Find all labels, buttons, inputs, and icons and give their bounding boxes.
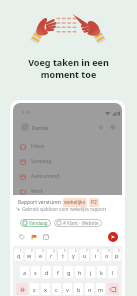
staticText: P2 <box>91 199 97 206</box>
staticText: d <box>45 269 49 276</box>
other: Label <box>19 234 25 240</box>
button[interactable]: Vandaag <box>20 155 122 168</box>
button[interactable]: Aankomend <box>20 170 122 183</box>
other: Priority <box>31 234 37 240</box>
staticText: v <box>66 286 69 293</box>
staticText: 9 <box>108 249 110 253</box>
button[interactable]: Send <box>108 232 118 242</box>
staticText: p <box>115 252 119 259</box>
button[interactable]: d <box>42 266 51 278</box>
button[interactable]: w <box>25 249 34 261</box>
button[interactable]: Backspace <box>107 283 119 295</box>
button[interactable]: u <box>80 249 89 261</box>
button[interactable]: # Klant - Website <box>54 219 102 227</box>
button[interactable]: b <box>74 283 83 295</box>
button[interactable]: h <box>75 266 84 278</box>
staticText: q <box>17 252 21 259</box>
button[interactable]: k <box>97 266 106 278</box>
staticText: a <box>23 269 27 276</box>
staticText: Vandaag <box>31 158 52 165</box>
staticText: s <box>34 269 37 276</box>
staticText: u <box>83 252 87 259</box>
button[interactable]: c <box>52 283 61 295</box>
staticText: e <box>39 252 43 259</box>
button[interactable]: g <box>64 266 73 278</box>
staticText: Gebruik sjabloon voor wekelijks rapport <box>22 206 107 212</box>
button[interactable]: n <box>85 283 94 295</box>
staticText: 4 <box>53 249 55 253</box>
button[interactable]: s <box>31 266 40 278</box>
staticText: 8 <box>97 249 99 253</box>
staticText: t <box>62 252 64 259</box>
staticText: f <box>57 269 59 276</box>
button[interactable]: j <box>86 266 95 278</box>
button[interactable]: p <box>113 249 121 261</box>
staticText: 1 <box>20 249 22 253</box>
staticText: y <box>72 252 75 259</box>
button[interactable]: i <box>91 249 100 261</box>
button[interactable]: z <box>30 283 39 295</box>
staticText: 8:33 <box>22 110 30 115</box>
staticText: # Klant - Website <box>63 220 99 226</box>
button[interactable]: Werk <box>20 185 122 198</box>
button[interactable]: Shift <box>16 283 28 295</box>
staticText: Rapport versturen <box>18 199 63 206</box>
staticText: wekelijks <box>64 199 86 206</box>
staticText: i <box>95 252 97 259</box>
button[interactable]: q <box>14 249 23 261</box>
button[interactable]: r <box>47 249 56 261</box>
staticText: Voeg taken in een moment toe <box>0 56 137 81</box>
staticText: Denise <box>32 125 49 132</box>
staticText: m <box>98 286 104 293</box>
staticText: 2 <box>31 249 33 253</box>
staticText: 0 <box>118 249 120 253</box>
button[interactable]: l <box>108 266 117 278</box>
staticText: r <box>50 252 53 259</box>
button[interactable]: m <box>96 283 105 295</box>
button[interactable]: Vandaag <box>20 219 51 227</box>
other: Notifications <box>98 124 104 130</box>
staticText: j <box>90 269 92 276</box>
staticText: Inbox <box>31 143 45 150</box>
button[interactable]: e <box>36 249 45 261</box>
button[interactable]: a <box>20 266 29 278</box>
button[interactable]: o <box>102 249 111 261</box>
staticText: c <box>55 286 58 293</box>
button[interactable]: f <box>53 266 62 278</box>
button[interactable]: Inbox <box>20 140 122 153</box>
staticText: k <box>100 269 103 276</box>
staticText: Aankomend <box>31 173 60 180</box>
button[interactable]: v <box>63 283 72 295</box>
staticText: n <box>88 286 92 293</box>
other: Reminder <box>43 234 49 240</box>
staticText: w <box>27 252 32 259</box>
staticText: 5 <box>64 249 66 253</box>
staticText: Vandaag <box>29 220 48 226</box>
staticText: l <box>112 269 114 276</box>
button[interactable]: t <box>58 249 67 261</box>
other: Settings <box>110 124 116 130</box>
staticText: Werk <box>31 188 44 195</box>
staticText: h <box>78 269 82 276</box>
staticText: o <box>105 252 109 259</box>
button[interactable]: x <box>41 283 50 295</box>
staticText: g <box>67 269 71 276</box>
staticText: 3 <box>42 249 44 253</box>
staticText: 7 <box>86 249 88 253</box>
button[interactable]: y <box>69 249 78 261</box>
staticText: b <box>77 286 81 293</box>
staticText: z <box>33 286 36 293</box>
staticText: x <box>44 286 47 293</box>
staticText: 6 <box>75 249 77 253</box>
